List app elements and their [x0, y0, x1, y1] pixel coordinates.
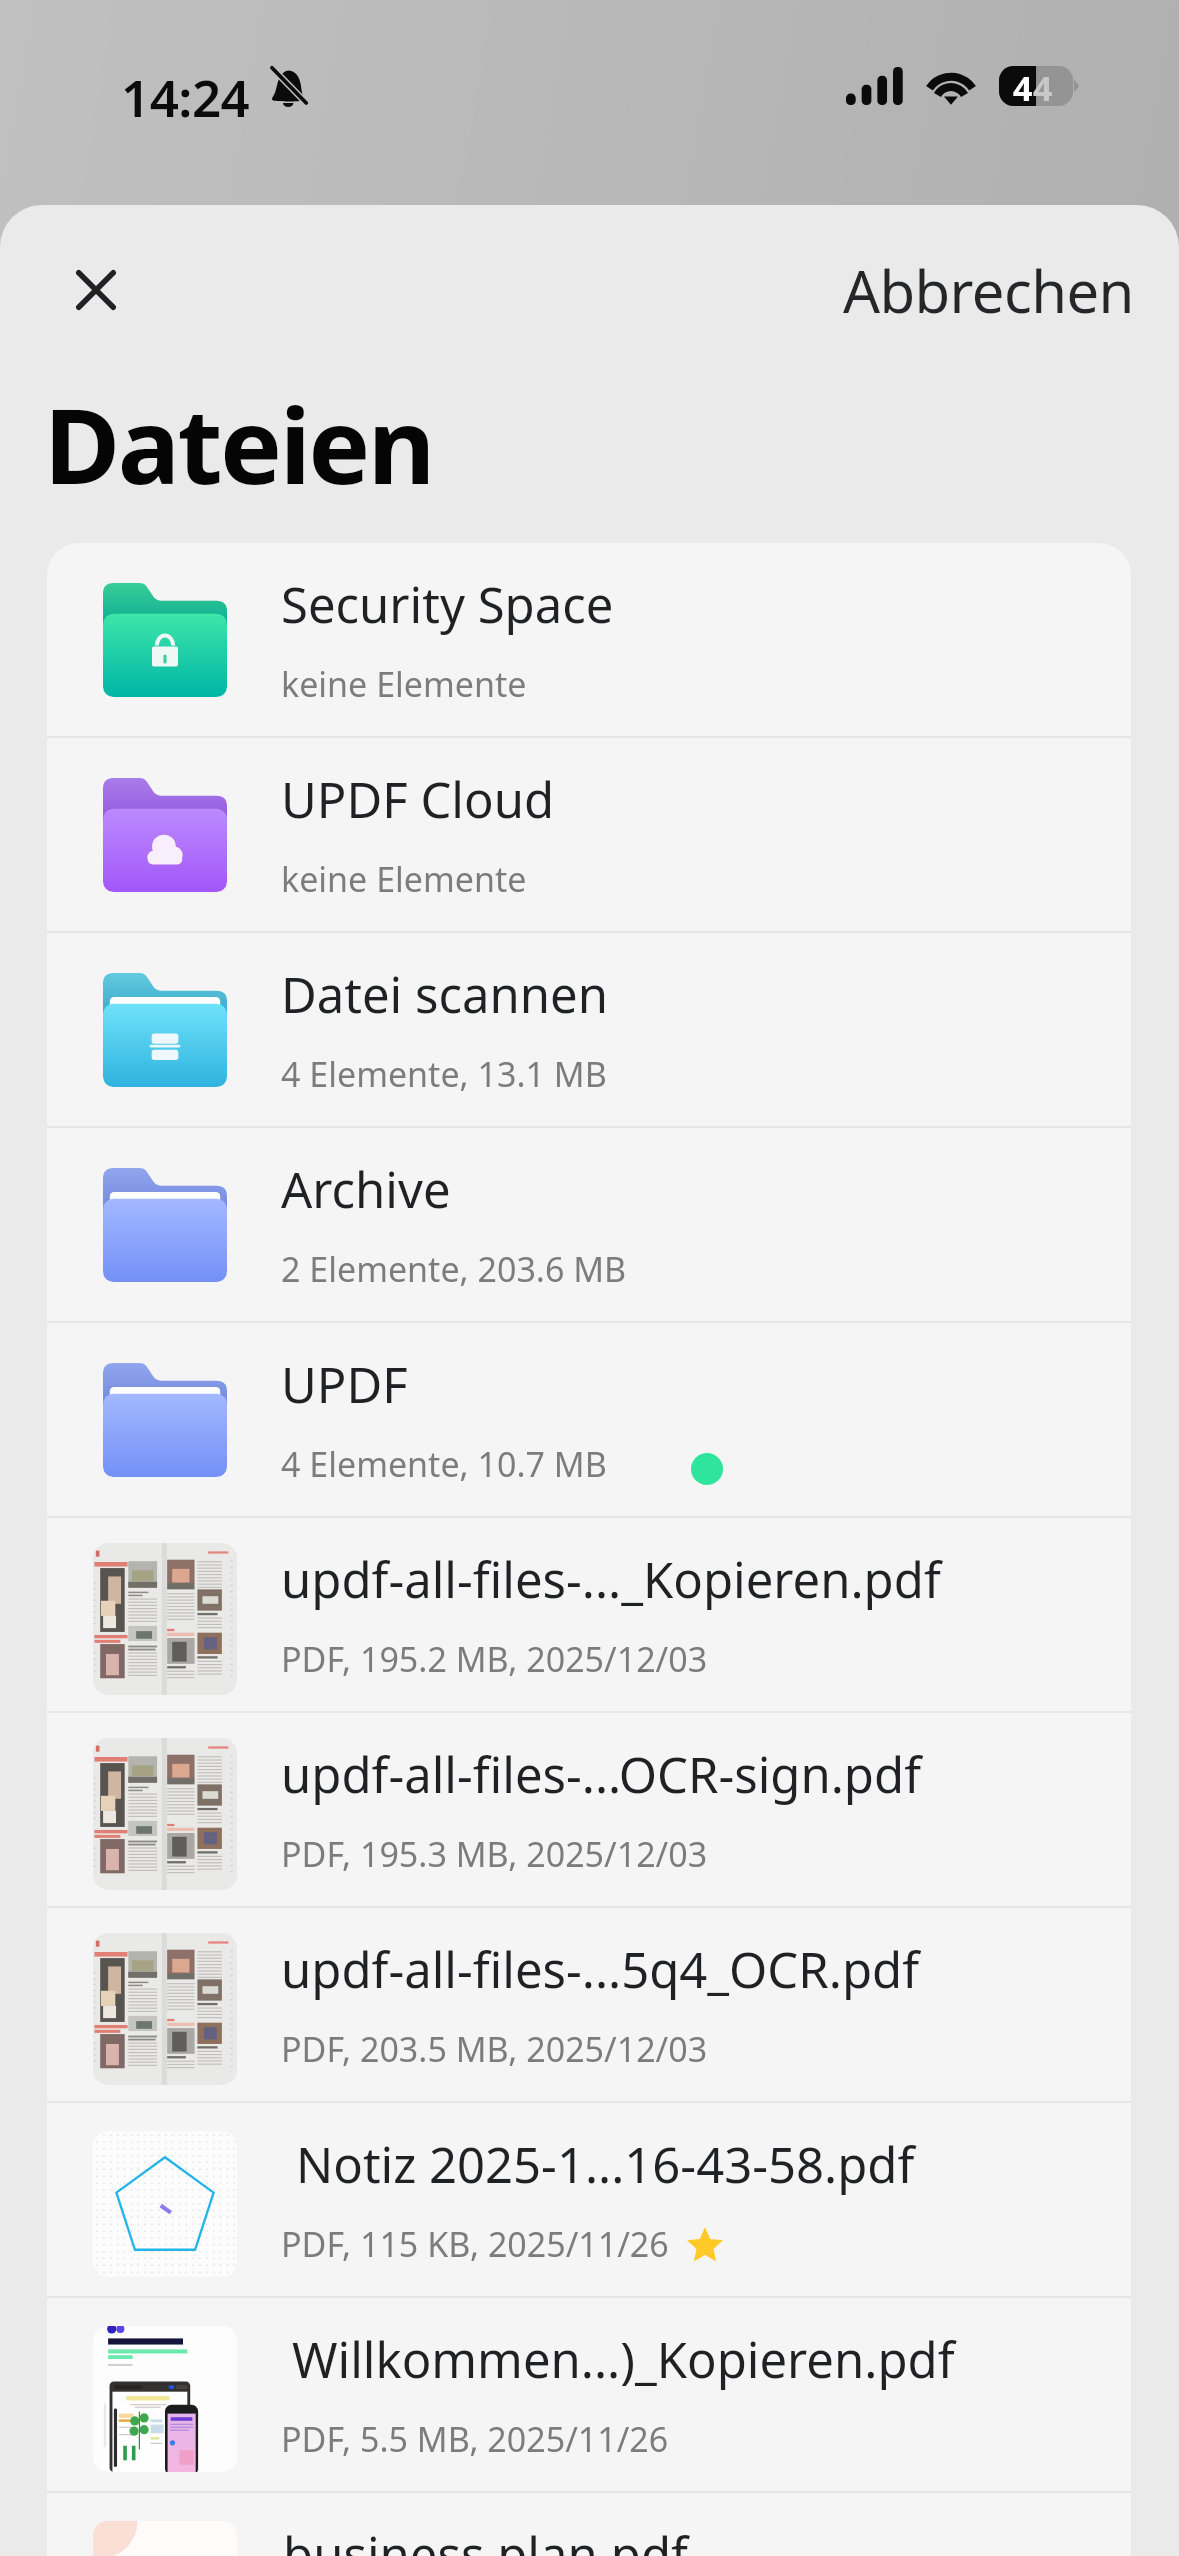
staticText: PDF, 203.5 MB, 2025/12/03 — [281, 2026, 708, 2072]
staticText: Notiz 2025-1...16-43-58.pdf — [296, 2131, 915, 2198]
staticText: keine Elemente — [281, 661, 527, 707]
button[interactable]: Notiz 2025-1...16-43-58.pdf — [47, 2103, 1131, 2296]
staticText: UPDF — [281, 1351, 408, 1418]
staticText: 4 — [1033, 65, 1053, 105]
staticText: 4 Elemente, 13.1 MB — [281, 1051, 607, 1097]
staticText: PDF, 115 KB, 2025/11/26 — [281, 2221, 669, 2267]
button[interactable]: UPDF Cloud — [47, 738, 1131, 931]
staticText: updf-all-files-..._Kopieren.pdf — [281, 1546, 941, 1613]
staticText: 4 — [1013, 65, 1033, 105]
button[interactable]: Willkommen...)_Kopieren.pdf — [47, 2298, 1131, 2491]
staticText: updf-all-files-...OCR-sign.pdf — [281, 1741, 921, 1808]
staticText: Datei scannen — [281, 961, 608, 1028]
button[interactable]: Schließen — [56, 250, 136, 330]
button[interactable]: business plan.pdf — [47, 2493, 1131, 2556]
button[interactable]: Datei scannen — [47, 933, 1131, 1126]
staticText: 4 Elemente, 10.7 MB — [281, 1441, 607, 1487]
button[interactable]: Archive — [47, 1128, 1131, 1321]
button[interactable]: Security Space — [47, 543, 1131, 736]
staticText: UPDF Cloud — [281, 766, 555, 833]
button[interactable]: updf-all-files-...OCR-sign.pdf — [47, 1713, 1131, 1906]
staticText: updf-all-files-...5q4_OCR.pdf — [281, 1936, 920, 2003]
staticText: Archive — [281, 1156, 451, 1223]
staticText: PDF, 195.2 MB, 2025/12/03 — [281, 1636, 708, 1682]
button[interactable]: updf-all-files-..._Kopieren.pdf — [47, 1518, 1131, 1711]
staticText: keine Elemente — [281, 856, 527, 902]
button[interactable]: Abbrechen — [840, 245, 1136, 335]
staticText: 2 Elemente, 203.6 MB — [281, 1246, 627, 1292]
staticText: 14:24 — [121, 62, 250, 131]
staticText: Dateien — [44, 373, 433, 515]
staticText: PDF, 5.5 MB, 2025/11/26 — [281, 2416, 669, 2462]
staticText: Abbrechen — [843, 251, 1134, 330]
staticText: business plan.pdf — [283, 2521, 688, 2556]
button[interactable]: UPDF — [47, 1323, 1131, 1516]
staticText: Willkommen...)_Kopieren.pdf — [292, 2326, 955, 2393]
staticText: Security Space — [281, 571, 614, 638]
button[interactable]: updf-all-files-...5q4_OCR.pdf — [47, 1908, 1131, 2101]
staticText: PDF, 195.3 MB, 2025/12/03 — [281, 1831, 708, 1877]
